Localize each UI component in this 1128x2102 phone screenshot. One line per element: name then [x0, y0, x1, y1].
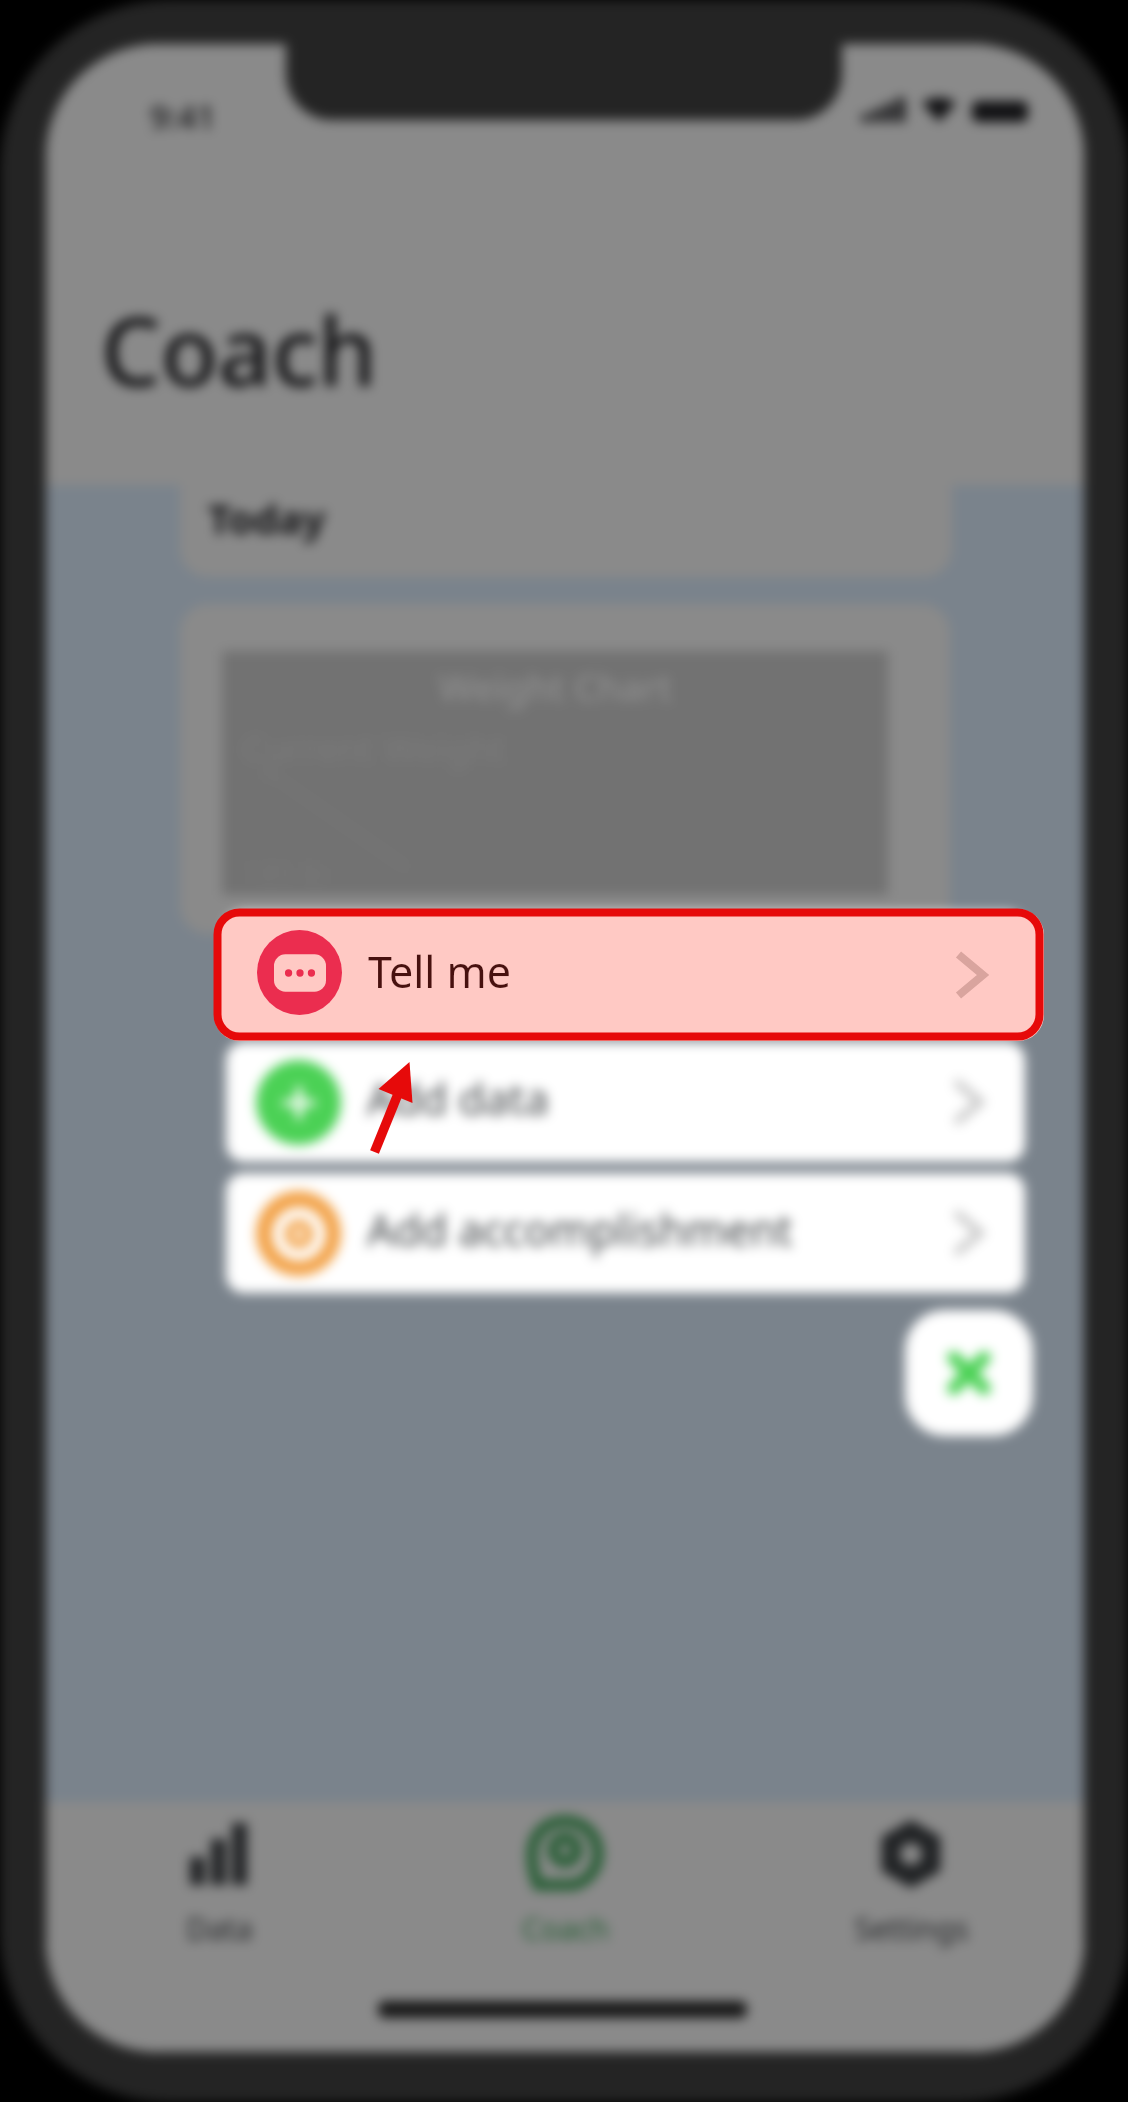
staticText: Data [186, 1908, 253, 1949]
button[interactable]: Data [46, 1804, 392, 1949]
button[interactable]: Add data [226, 1042, 1025, 1162]
staticText: Coach [522, 1908, 609, 1949]
staticText: Weight Chart [439, 661, 672, 711]
staticText: Add accomplishment [367, 1200, 793, 1259]
staticText: Tell me [367, 939, 510, 998]
staticText: Today [208, 491, 326, 545]
staticText: Coach [101, 286, 377, 414]
button[interactable]: Coach [392, 1804, 738, 1949]
button[interactable]: Tell me [214, 909, 1044, 1041]
staticText: 9:41 [150, 94, 216, 139]
staticText: Settings [854, 1908, 969, 1949]
button[interactable]: Tell me [226, 912, 1025, 1032]
button[interactable]: Settings [738, 1804, 1084, 1949]
staticText: Add data [367, 1069, 549, 1128]
button[interactable]: Close [905, 1310, 1033, 1436]
staticText: Tell me [368, 942, 511, 1001]
button[interactable]: Add accomplishment [226, 1173, 1025, 1293]
